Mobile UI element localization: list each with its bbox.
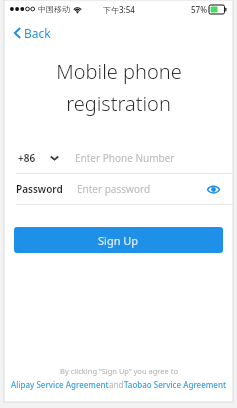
staticText: Sign Up <box>98 233 139 248</box>
button[interactable]: +86 <box>16 147 61 169</box>
button[interactable]: Back <box>10 22 55 44</box>
staticText: registration <box>66 90 171 117</box>
staticText: Taobao Service Agreement <box>124 379 227 390</box>
button[interactable]: Sign Up <box>14 227 223 253</box>
staticText: Enter password <box>77 182 151 196</box>
button[interactable]: Enter password <box>77 182 203 196</box>
button[interactable]: Alipay Service Agreement <box>11 379 109 390</box>
staticText: Mobile phone <box>56 58 182 85</box>
staticText: Enter Phone Number <box>75 151 175 165</box>
staticText: By clicking “Sign Up” you agree to <box>60 366 178 376</box>
button[interactable]: Enter Phone Number <box>75 151 233 165</box>
staticText: Password <box>16 182 63 196</box>
staticText: 下午3:54 <box>103 4 135 15</box>
staticText: Alipay Service Agreement <box>11 379 109 390</box>
staticText: +86 <box>18 151 36 165</box>
button[interactable]: Taobao Service Agreement <box>124 379 227 390</box>
staticText: and <box>109 379 124 390</box>
staticText: Back <box>24 25 51 41</box>
staticText: 57% <box>191 4 207 15</box>
button[interactable]: Show password <box>203 179 223 199</box>
staticText: 中国移动 <box>38 4 70 14</box>
